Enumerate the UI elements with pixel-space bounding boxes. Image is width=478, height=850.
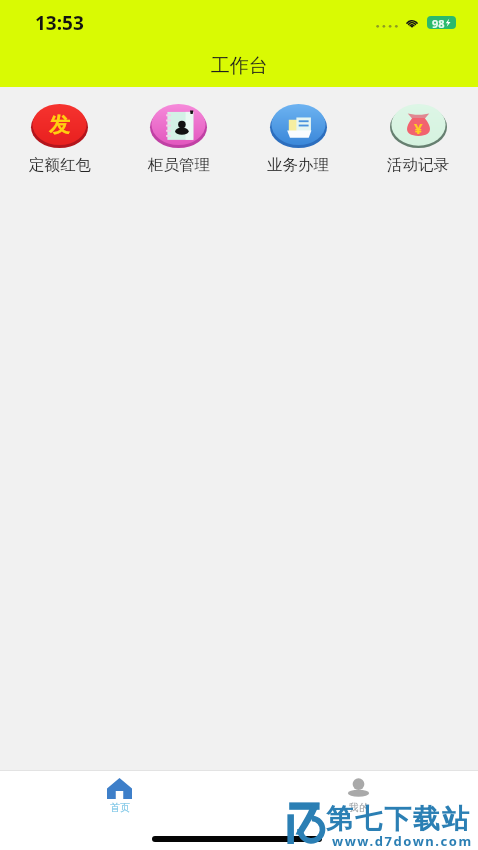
staticText: 13:53 [35,10,84,36]
button[interactable]: 首页 [0,771,239,821]
staticText: 我的 [349,801,369,814]
button[interactable]: 发 [0,104,119,175]
staticText: www.d7down.com [332,832,473,850]
staticText: 98 [432,16,445,29]
button[interactable]: 柜员管理 [119,104,238,175]
staticText: 第七下载站 [325,802,470,836]
staticText: 业务办理 [267,155,329,175]
staticText: 发 [49,112,70,138]
other: 我的 [346,778,371,799]
staticText: 定额红包 [29,155,91,175]
button[interactable]: 业务办理 [238,104,358,175]
button[interactable]: ¥ [358,104,478,175]
staticText: 柜员管理 [148,155,210,175]
staticText: ¥ [414,118,423,138]
staticText: 工作台 [211,54,268,78]
button[interactable]: 我的 [239,771,478,821]
staticText: 首页 [110,801,130,814]
staticText: 活动记录 [387,155,449,175]
other: 首页 [107,778,132,799]
